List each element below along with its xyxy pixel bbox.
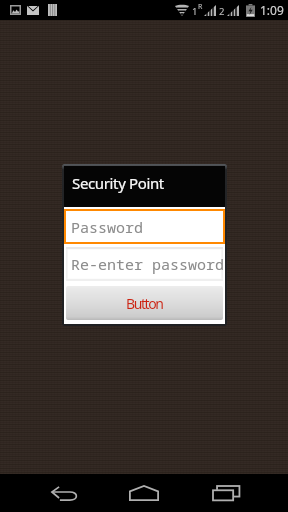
button[interactable]: Back [40,474,88,512]
staticText: Password [71,217,144,237]
staticText: 1:09 [260,2,284,18]
staticText: Security Point [72,173,164,193]
button[interactable]: Home [120,474,168,512]
staticText: 2 [219,5,225,18]
staticText: Re-enter password [71,254,223,274]
button[interactable]: Password [66,211,223,242]
staticText: 1 [192,5,198,18]
button[interactable]: Re-enter password [66,247,223,281]
button[interactable]: Recent apps [202,474,250,512]
staticText: R [198,2,203,12]
staticText: Button [126,294,163,313]
button[interactable]: Button [66,286,223,320]
